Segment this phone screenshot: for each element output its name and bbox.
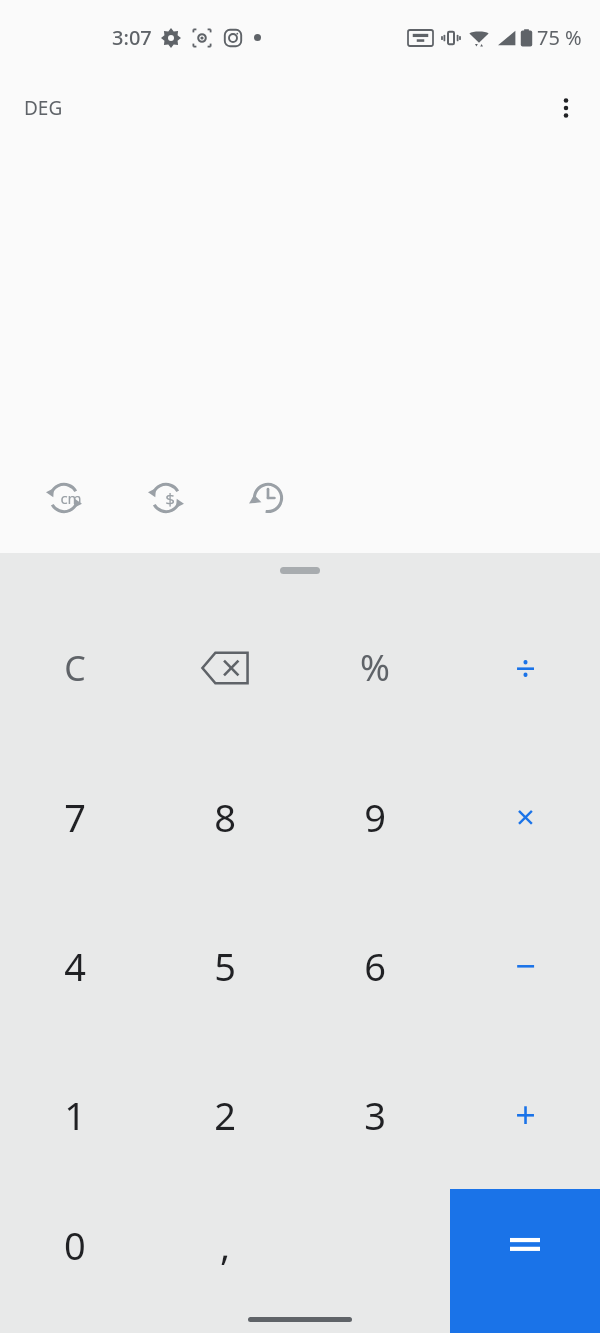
button[interactable]: History	[242, 472, 294, 524]
button[interactable]: 4	[0, 891, 150, 1040]
staticText: 3	[364, 1089, 386, 1141]
button[interactable]: C	[0, 593, 150, 742]
staticText: 7	[64, 791, 86, 843]
button[interactable]: More options	[542, 84, 590, 132]
button[interactable]: ,	[150, 1189, 300, 1333]
button[interactable]: ÷	[450, 593, 600, 742]
staticText: C	[64, 645, 86, 691]
staticText: ÷	[515, 643, 536, 692]
staticText: ,	[220, 1219, 231, 1271]
button[interactable]: 8	[150, 742, 300, 891]
staticText: 0	[64, 1219, 86, 1271]
button[interactable]: ×	[450, 742, 600, 891]
button[interactable]: +	[450, 1040, 600, 1189]
staticText: 1	[64, 1089, 86, 1141]
staticText: 2	[214, 1089, 236, 1141]
button[interactable]: %	[300, 593, 450, 742]
staticText: 9	[364, 791, 386, 843]
button[interactable]: 5	[150, 891, 300, 1040]
staticText: 4	[64, 940, 86, 992]
staticText: 3:07	[112, 24, 152, 51]
staticText: 75 %	[537, 24, 582, 51]
staticText: cm	[60, 488, 82, 508]
staticText: +	[515, 1090, 536, 1139]
button[interactable]: 6	[300, 891, 450, 1040]
button[interactable]: Currency converter	[140, 472, 192, 524]
button[interactable]: Backspace	[150, 593, 300, 742]
button[interactable]	[450, 1189, 600, 1333]
staticText: 6	[364, 940, 386, 992]
staticText: 8	[214, 791, 236, 843]
button[interactable]: 1	[0, 1040, 150, 1189]
button[interactable]: 3	[300, 1040, 450, 1189]
button[interactable]: 2	[150, 1040, 300, 1189]
button[interactable]: 9	[300, 742, 450, 891]
button[interactable]: 0	[0, 1189, 150, 1333]
staticText: %	[360, 643, 390, 692]
staticText: −	[515, 941, 536, 990]
button[interactable]: −	[450, 891, 600, 1040]
staticText: DEG	[24, 95, 63, 121]
button[interactable]: Unit converter	[38, 472, 90, 524]
button[interactable]: 7	[0, 742, 150, 891]
staticText: $	[165, 487, 175, 510]
staticText: 5	[214, 940, 236, 992]
staticText: ×	[516, 794, 535, 839]
button[interactable]: DEG	[10, 87, 77, 129]
